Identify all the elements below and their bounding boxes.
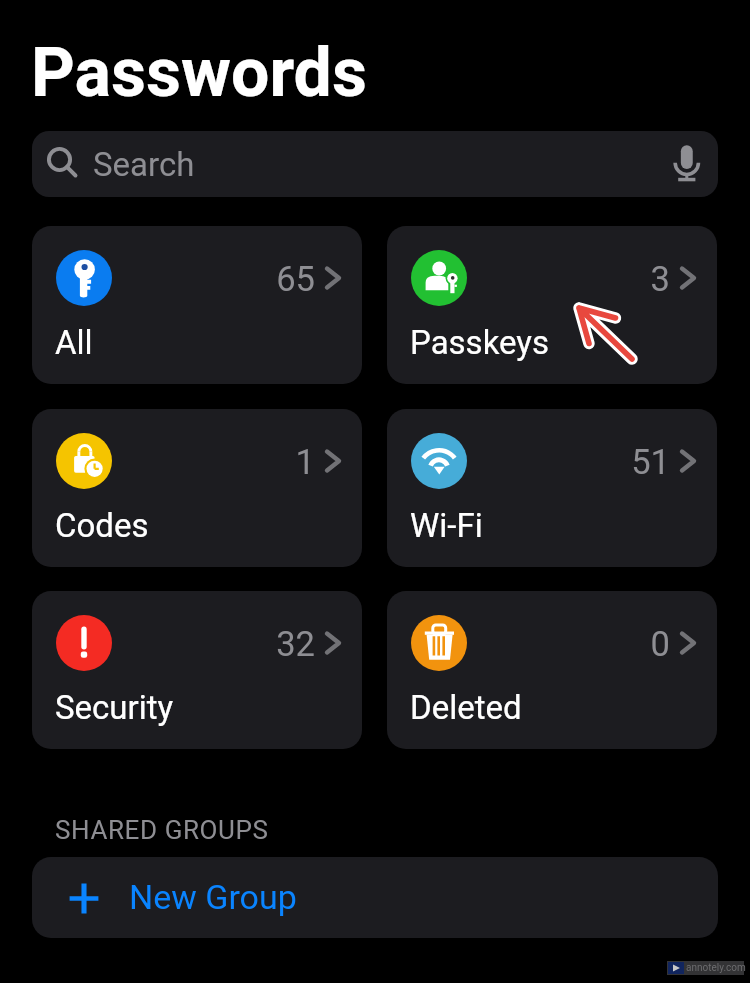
staticText: Codes (55, 506, 149, 545)
button[interactable]: Search (32, 131, 718, 197)
staticText: Passkeys (410, 323, 549, 362)
button[interactable]: 1 (32, 409, 362, 567)
staticText: SHARED GROUPS (55, 815, 269, 845)
staticText: New Group (129, 877, 297, 917)
button[interactable]: 32 (32, 591, 362, 749)
button[interactable]: New Group (32, 857, 718, 938)
button[interactable]: 51 (387, 409, 717, 567)
staticText: Security (55, 688, 174, 727)
staticText: Search (93, 145, 195, 184)
staticText: 1 (32, 442, 315, 482)
staticText: Deleted (410, 688, 522, 727)
staticText: 65 (32, 259, 315, 299)
button[interactable]: Voice search (663, 140, 711, 188)
staticText: annotely.com (686, 962, 746, 974)
staticText: 3 (387, 259, 670, 299)
button[interactable]: 3 (387, 226, 717, 384)
button[interactable]: 0 (387, 591, 717, 749)
staticText: Passwords (31, 33, 367, 113)
staticText: 0 (387, 624, 670, 664)
staticText: Wi-Fi (410, 506, 483, 545)
staticText: 32 (32, 624, 315, 664)
button[interactable]: 65 (32, 226, 362, 384)
staticText: All (55, 323, 93, 362)
staticText: 51 (387, 442, 670, 482)
